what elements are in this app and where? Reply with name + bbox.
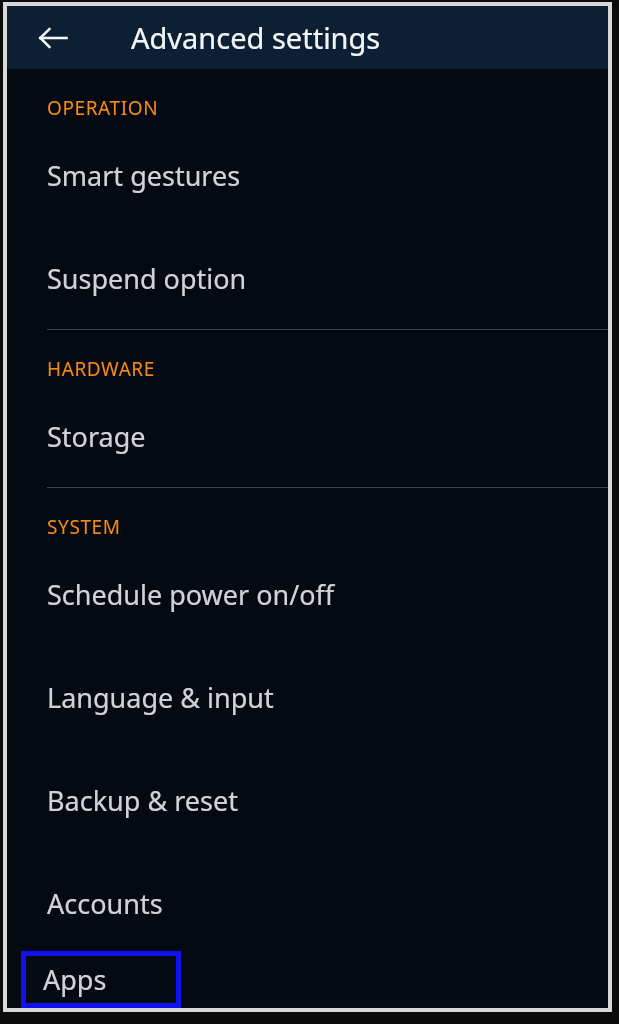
- staticText: Advanced settings: [131, 18, 381, 57]
- button[interactable]: Accounts: [7, 885, 608, 922]
- staticText: Smart gestures: [47, 157, 241, 194]
- staticText: Storage: [47, 418, 146, 455]
- staticText: Apps: [43, 961, 107, 998]
- button[interactable]: Apps: [21, 951, 181, 1008]
- button[interactable]: Storage: [7, 418, 608, 455]
- staticText: Suspend option: [47, 260, 247, 297]
- button[interactable]: Suspend option: [7, 260, 608, 297]
- staticText: HARDWARE: [47, 356, 155, 382]
- staticText: OPERATION: [47, 95, 159, 121]
- staticText: Accounts: [47, 885, 163, 922]
- button[interactable]: Smart gestures: [7, 157, 608, 194]
- staticText: Schedule power on/off: [47, 576, 335, 613]
- button[interactable]: Backup & reset: [7, 782, 608, 819]
- staticText: Language & input: [47, 679, 274, 716]
- button[interactable]: Schedule power on/off: [7, 576, 608, 613]
- button[interactable]: Language & input: [7, 679, 608, 716]
- button[interactable]: Back: [31, 16, 75, 60]
- staticText: SYSTEM: [47, 514, 121, 540]
- staticText: Backup & reset: [47, 782, 238, 819]
